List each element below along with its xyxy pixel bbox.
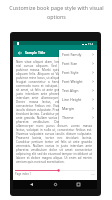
staticText: 13:4 (88, 43, 94, 47)
staticText: Customize book page style with visual op… (8, 4, 105, 20)
button[interactable]: Line Height (59, 95, 97, 104)
staticText: Sample Title (25, 50, 46, 54)
staticText: Line Height (62, 97, 82, 102)
button[interactable]: Font Size (59, 59, 97, 68)
button[interactable]: Font Style (59, 68, 97, 77)
button[interactable]: Back (27, 180, 36, 189)
staticText: Font Family (62, 52, 82, 57)
button[interactable]: Recents (74, 180, 83, 189)
button[interactable]: Text Align (59, 86, 97, 95)
staticText: Theme (62, 115, 74, 120)
staticText: Nam vitae aliquet diam, lorem tingilat i… (16, 60, 92, 164)
button[interactable]: Home (51, 180, 60, 189)
button[interactable]: Margin (59, 104, 97, 113)
staticText: Page index 1 (15, 172, 32, 176)
button[interactable]: Theme (59, 113, 97, 122)
staticText: Font Size (62, 61, 78, 66)
staticText: Font Weight (62, 79, 83, 84)
staticText: 1/1 (91, 172, 95, 175)
staticText: Text Align (62, 88, 79, 93)
button[interactable]: Font Family (59, 50, 97, 59)
button[interactable]: Back (15, 48, 24, 57)
staticText: Font Style (62, 70, 79, 75)
staticText: Margin (62, 106, 75, 111)
button[interactable]: Font Weight (59, 77, 97, 86)
